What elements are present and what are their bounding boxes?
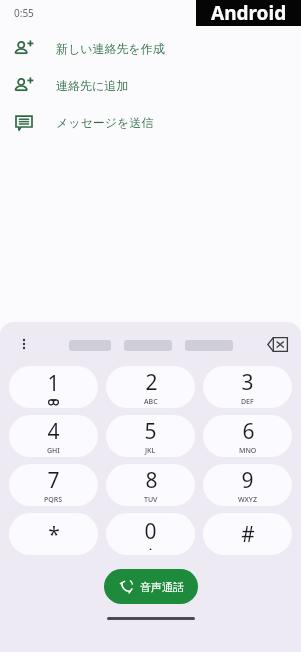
staticText: 5 <box>144 417 157 446</box>
staticText: 9 <box>241 466 254 495</box>
staticText: PQRS <box>44 495 63 505</box>
button[interactable]: 新しい連絡先を作成 <box>0 30 301 67</box>
staticText: 6 <box>242 417 255 446</box>
button[interactable]: 8 <box>106 464 195 506</box>
staticText: WXYZ <box>238 495 257 505</box>
button[interactable]: 2 <box>106 366 195 408</box>
staticText: 0:55 <box>14 6 34 20</box>
staticText: 連絡先に追加 <box>56 78 129 93</box>
staticText: MNO <box>239 446 257 456</box>
staticText: DEF <box>241 397 254 407</box>
button[interactable]: 3 <box>203 366 292 408</box>
staticText: 2 <box>145 368 158 397</box>
staticText: GHI <box>47 446 60 456</box>
staticText: JKL <box>145 446 156 456</box>
button[interactable]: * <box>9 513 98 555</box>
staticText: 1 <box>47 369 60 398</box>
staticText: 8 <box>145 466 158 495</box>
button[interactable]: 9 <box>203 464 292 506</box>
button[interactable]: 6 <box>203 415 292 457</box>
button[interactable]: 7 <box>9 464 98 506</box>
staticText: # <box>241 520 255 549</box>
button[interactable]: # <box>203 513 292 555</box>
staticText: ABC <box>144 397 158 407</box>
button[interactable]: 4 <box>9 415 98 457</box>
button[interactable]: 連絡先に追加 <box>0 67 301 104</box>
staticText: メッセージを送信 <box>56 115 154 130</box>
button[interactable]: 1 <box>9 366 98 408</box>
button[interactable]: Backspace <box>262 329 292 359</box>
staticText: 7 <box>47 466 60 495</box>
button[interactable]: メッセージを送信 <box>0 104 301 141</box>
staticText: 3 <box>241 368 254 397</box>
staticText: Android <box>211 0 287 26</box>
button[interactable]: 0 <box>106 513 195 555</box>
staticText: 音声通話 <box>140 580 184 594</box>
staticText: 0 <box>144 517 157 546</box>
button[interactable]: 音声通話 <box>104 569 198 604</box>
staticText: 新しい連絡先を作成 <box>56 41 165 56</box>
button[interactable]: More options <box>10 330 38 358</box>
staticText: * <box>48 520 60 549</box>
staticText: 4 <box>47 417 60 446</box>
button[interactable]: 5 <box>106 415 195 457</box>
staticText: TUV <box>144 495 158 505</box>
